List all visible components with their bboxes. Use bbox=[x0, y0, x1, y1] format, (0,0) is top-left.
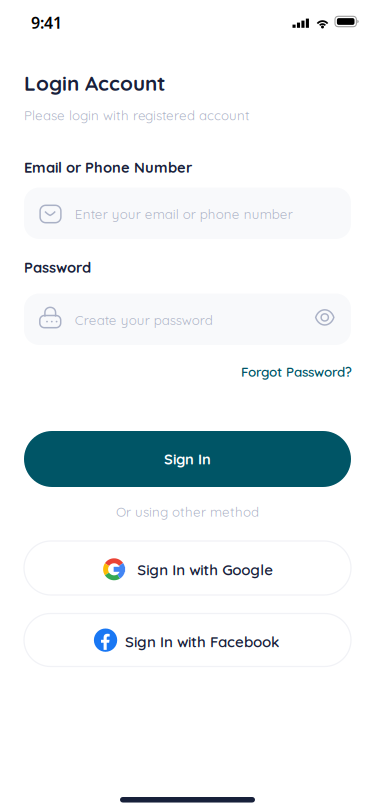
staticText: Create your password bbox=[75, 312, 213, 328]
staticText: Sign In with Google bbox=[137, 560, 273, 579]
staticText: Or using other method bbox=[116, 503, 259, 520]
staticText: Password bbox=[24, 258, 91, 276]
button[interactable]: Sign In with Google bbox=[24, 541, 351, 595]
button[interactable]: Sign In bbox=[24, 431, 351, 487]
button[interactable]: Forgot Password? bbox=[237, 357, 356, 386]
staticText: Enter your email or phone number bbox=[75, 206, 293, 222]
staticText: Login Account bbox=[24, 70, 165, 96]
staticText: Forgot Password? bbox=[241, 363, 352, 380]
staticText: Sign In with Facebook bbox=[125, 632, 279, 651]
staticText: Please login with registered account bbox=[24, 107, 250, 124]
staticText: 9:41 bbox=[31, 12, 62, 33]
staticText: Sign In bbox=[164, 450, 211, 468]
button[interactable]: Show password bbox=[304, 297, 346, 338]
staticText: Email or Phone Number bbox=[24, 158, 192, 176]
button[interactable]: Sign In with Facebook bbox=[24, 613, 351, 666]
